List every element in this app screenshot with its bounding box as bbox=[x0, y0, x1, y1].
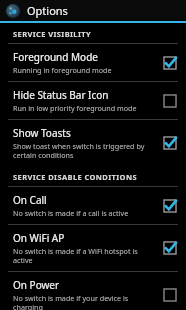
staticText: On WiFi AP bbox=[13, 231, 65, 245]
button[interactable]: Hide Status Bar Icon bbox=[0, 82, 186, 119]
staticText: Run in low priority foreground mode bbox=[13, 103, 137, 113]
staticText: Show toast when switch is triggered by c… bbox=[13, 141, 157, 160]
other: Hide Status Bar Icon disabled bbox=[163, 94, 177, 108]
button[interactable]: Foreground Mode bbox=[0, 44, 186, 81]
staticText: SERVICE DISABLE CONDITIONS bbox=[13, 172, 137, 182]
staticText: Running in foreground mode bbox=[13, 65, 112, 75]
staticText: On Call bbox=[13, 193, 47, 207]
staticText: Show Toasts bbox=[13, 126, 71, 140]
button[interactable]: Show Toasts bbox=[0, 120, 186, 166]
staticText: Hide Status Bar Icon bbox=[13, 88, 109, 102]
staticText: SERVICE VISIBILITY bbox=[13, 29, 92, 39]
other: On Power disabled bbox=[163, 288, 177, 302]
other: On WiFi AP enabled bbox=[163, 241, 177, 255]
staticText: Options bbox=[27, 3, 68, 18]
other: Show Toasts enabled bbox=[163, 136, 177, 150]
other: On Call enabled bbox=[163, 199, 177, 213]
staticText: No switch is made if a WiFi hotspot is a… bbox=[13, 246, 157, 265]
staticText: No switch is made if a call is active bbox=[13, 208, 129, 218]
button[interactable]: On Call bbox=[0, 187, 186, 224]
staticText: On Power bbox=[13, 278, 60, 292]
button[interactable]: On WiFi AP bbox=[0, 225, 186, 271]
other: Foreground Mode enabled bbox=[163, 56, 177, 70]
button[interactable]: On Power bbox=[0, 272, 186, 310]
staticText: No switch is made if your device is char… bbox=[13, 293, 157, 310]
other: App icon bbox=[5, 3, 21, 19]
staticText: Foreground Mode bbox=[13, 50, 98, 64]
button[interactable]: App icon bbox=[0, 0, 186, 21]
